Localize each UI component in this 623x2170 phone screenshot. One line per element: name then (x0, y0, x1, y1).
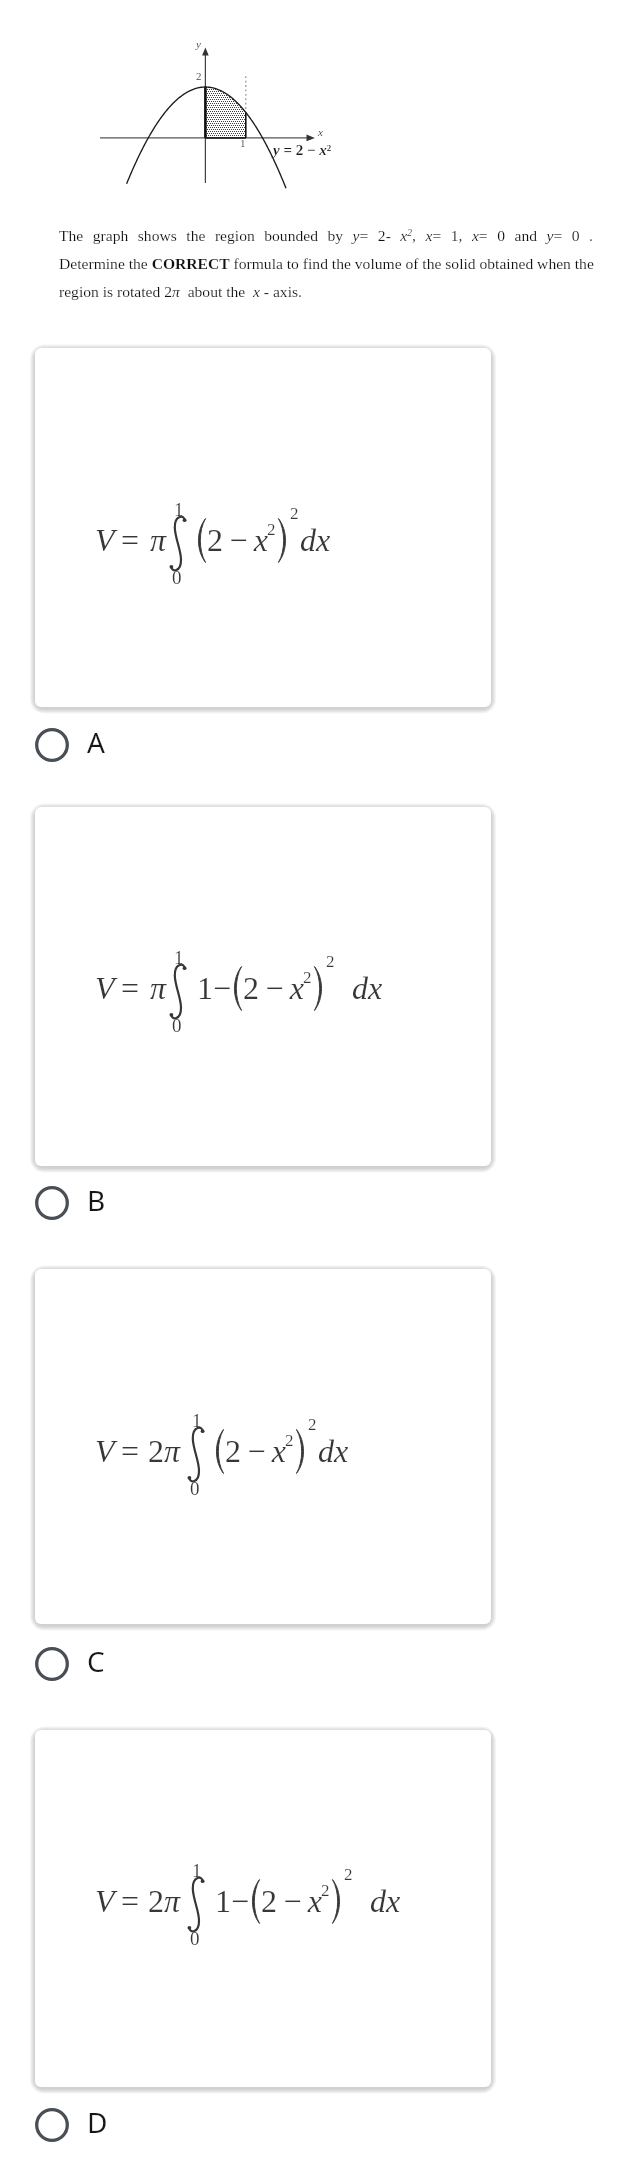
staticText: 0 (172, 1015, 182, 1036)
staticText: The graph shows the region bounded by y=… (59, 227, 593, 244)
staticText: V (95, 522, 115, 557)
staticText: 2 (326, 952, 335, 971)
staticText: π (150, 522, 167, 557)
staticText: = (121, 970, 140, 1005)
staticText: 2 (303, 968, 312, 987)
button[interactable]: Answer option C formula (35, 1269, 491, 1624)
staticText: dx (370, 1883, 401, 1918)
staticText: dx (352, 970, 383, 1005)
button[interactable]: C (0, 1639, 190, 1689)
staticText: V (95, 1433, 115, 1468)
staticText: 0 (190, 1478, 200, 1499)
staticText: 2π (148, 1883, 181, 1918)
staticText: D (87, 2103, 108, 2141)
staticText: dx (300, 522, 331, 557)
staticText: V (95, 970, 115, 1005)
staticText: B (87, 1181, 106, 1219)
staticText: 1 (240, 137, 246, 149)
staticText: x (318, 126, 323, 138)
button[interactable]: Answer option D formula (35, 1730, 491, 2087)
staticText: 2 (290, 504, 299, 523)
staticText: 2 (344, 1865, 353, 1884)
staticText: 2π (148, 1433, 181, 1468)
staticText: 2 − x (243, 970, 305, 1005)
staticText: 0 (190, 1928, 200, 1949)
staticText: 1 (192, 1410, 202, 1431)
staticText: A (87, 723, 105, 761)
button[interactable]: A (0, 720, 190, 770)
button[interactable]: Answer option B formula (35, 807, 491, 1166)
staticText: 2 − x (261, 1883, 323, 1918)
staticText: 2 (308, 1415, 317, 1434)
staticText: 2 (321, 1881, 330, 1900)
button[interactable]: D (0, 2100, 190, 2150)
staticText: = (121, 1433, 140, 1468)
staticText: 2 (196, 70, 202, 82)
staticText: = (121, 1883, 140, 1918)
staticText: 1 (192, 1860, 202, 1881)
staticText: 2 − x (207, 522, 269, 557)
staticText: 1− (197, 970, 232, 1005)
staticText: V (95, 1883, 115, 1918)
staticText: = (121, 522, 140, 557)
staticText: 1− (215, 1883, 250, 1918)
staticText: 1 (174, 499, 184, 520)
button[interactable]: B (0, 1178, 190, 1228)
staticText: C (87, 1642, 105, 1680)
staticText: 1 (174, 947, 184, 968)
staticText: π (150, 970, 167, 1005)
staticText: dx (318, 1433, 349, 1468)
staticText: 2 − x (225, 1433, 287, 1468)
staticText: 2 (267, 520, 276, 539)
staticText: y = 2 − x2 (273, 142, 332, 159)
staticText: 2 (285, 1431, 294, 1450)
staticText: Determine the CORRECT formula to find th… (59, 255, 594, 272)
staticText: 0 (172, 567, 182, 588)
button[interactable]: Answer option A formula (35, 348, 491, 707)
staticText: region is rotated 2π about the x - axis. (59, 283, 302, 300)
staticText: y (196, 38, 201, 50)
